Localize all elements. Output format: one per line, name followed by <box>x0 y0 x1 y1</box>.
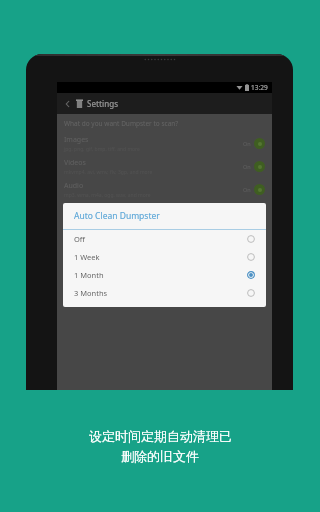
staticText: 设定时间定期自动清理已 <box>89 428 232 444</box>
staticText: 1 Week <box>74 252 247 262</box>
staticText: On <box>243 140 251 147</box>
staticText: What do you want Dumpster to scan? <box>64 119 179 128</box>
button[interactable]: Audio <box>57 178 272 201</box>
button[interactable]: 3 Months <box>63 284 266 302</box>
staticText: 13:29 <box>251 83 268 92</box>
button[interactable]: Back <box>61 97 75 111</box>
button[interactable]: 1 Week <box>63 248 266 266</box>
button[interactable]: Off <box>63 230 266 248</box>
staticText: Settings <box>87 98 119 109</box>
button[interactable]: Images <box>57 132 272 155</box>
staticText: pdf, docx, xls, ppt, txt, and more <box>64 215 140 222</box>
button[interactable]: Other <box>57 224 272 247</box>
staticText: On <box>243 186 251 193</box>
staticText: 3 Months <box>74 288 247 298</box>
button[interactable]: 1 Month <box>63 266 266 284</box>
button[interactable]: Toggle Audio <box>254 184 265 195</box>
staticText: On <box>243 163 251 170</box>
staticText: On <box>243 232 251 239</box>
staticText: 删除的旧文件 <box>121 448 199 464</box>
staticText: zip, apk, and all other file types <box>64 238 137 245</box>
button[interactable]: Toggle Other <box>254 230 265 241</box>
staticText: Off <box>74 234 247 244</box>
button[interactable]: Toggle Images <box>254 138 265 149</box>
staticText: Images <box>64 135 89 145</box>
staticText: Auto Clean Dumpster <box>74 210 160 222</box>
staticText: Documents <box>64 204 102 214</box>
button[interactable]: Documents <box>57 201 272 224</box>
staticText: Audio <box>64 181 84 191</box>
staticText: Other <box>64 227 84 237</box>
button[interactable]: Toggle Videos <box>254 161 265 172</box>
staticText: 1 Month <box>74 270 247 280</box>
button[interactable]: Videos <box>57 155 272 178</box>
staticText: Videos <box>64 158 86 168</box>
